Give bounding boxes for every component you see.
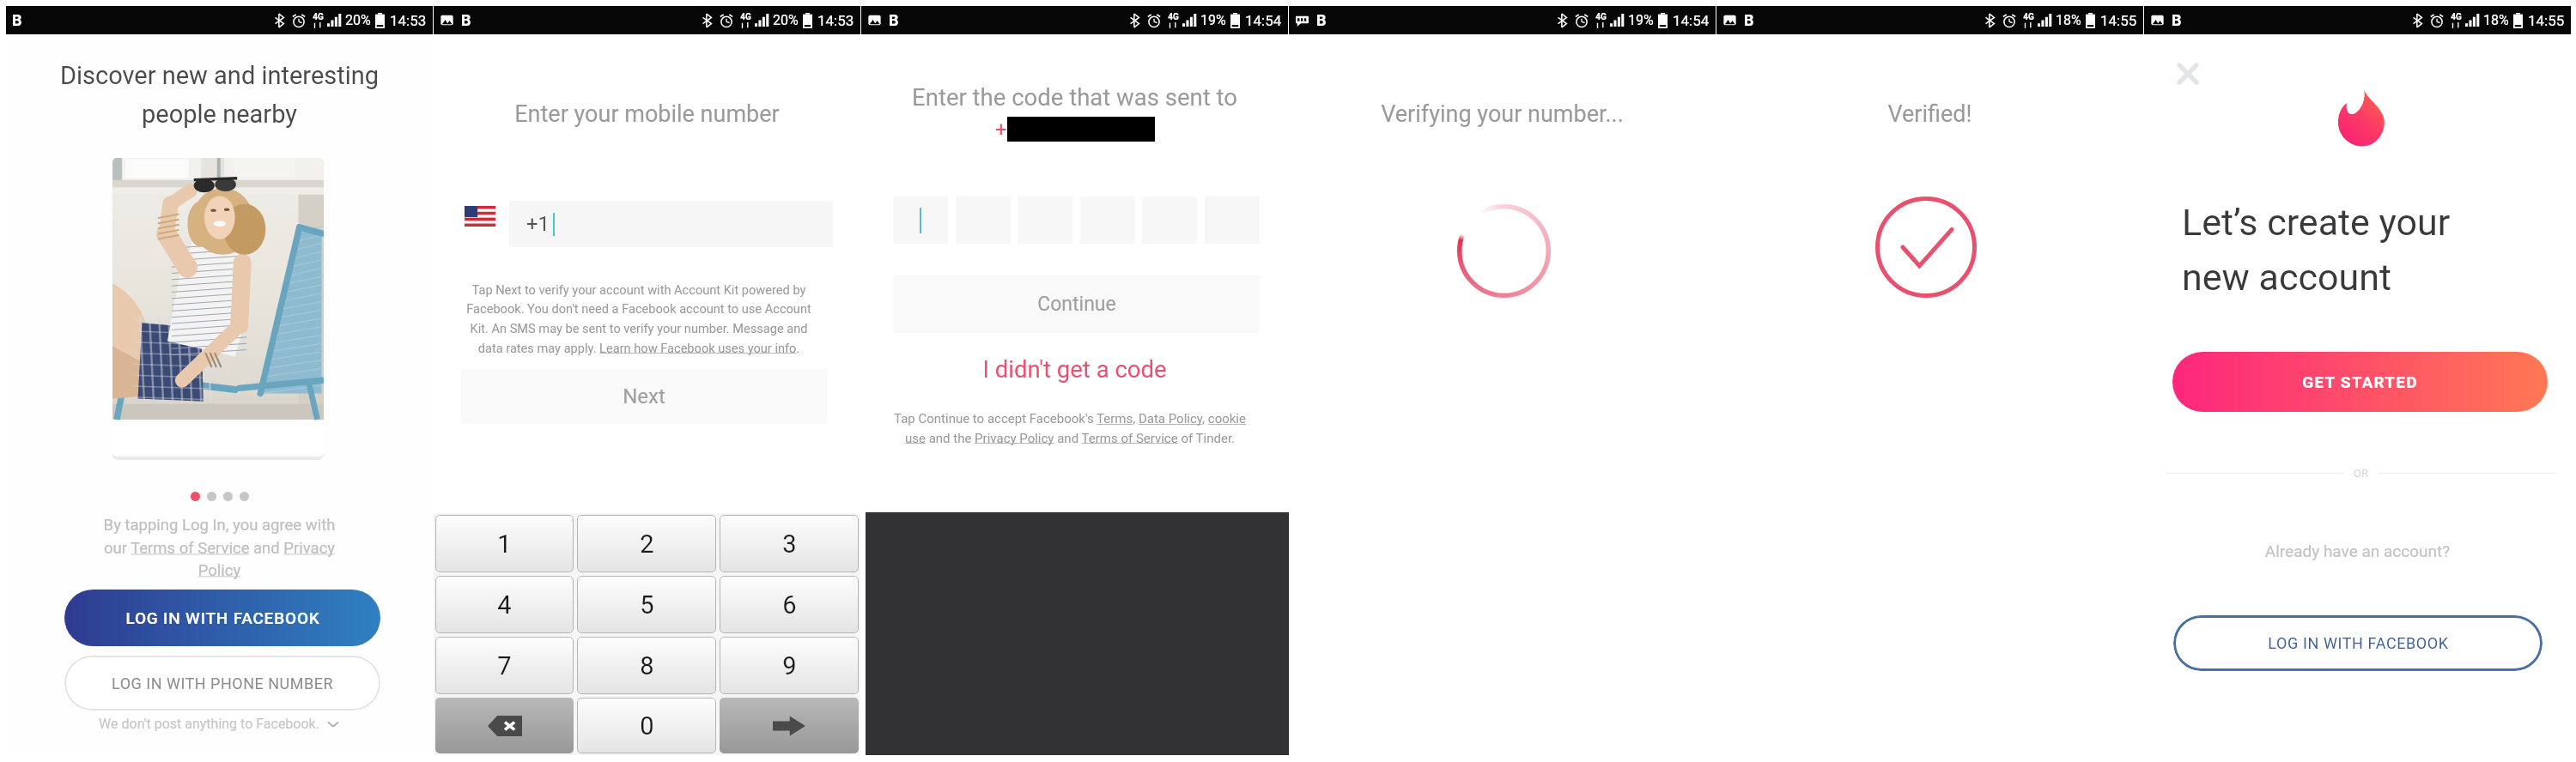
staticText: B: [12, 11, 22, 29]
staticText: 9: [782, 651, 797, 680]
button[interactable]: +1: [509, 201, 833, 247]
button[interactable]: 7: [435, 637, 574, 694]
staticText: Continue: [1037, 293, 1116, 316]
staticText: 18%: [2056, 12, 2081, 28]
staticText: OR: [2354, 467, 2368, 480]
staticText: B: [461, 11, 471, 29]
staticText: Tap Continue to accept Facebook's Terms,…: [888, 411, 1252, 445]
staticText: Let’s create your new account: [2182, 201, 2560, 299]
staticText: By tapping Log In, you agree with our Te…: [6, 516, 433, 579]
button[interactable]: 3: [720, 515, 859, 572]
staticText: 6: [782, 590, 797, 620]
staticText: 4G: [2451, 12, 2462, 22]
button[interactable]: Page 4: [240, 492, 249, 501]
button[interactable]: Page 3: [223, 492, 233, 501]
staticText: Already have an account?: [2144, 541, 2571, 560]
button[interactable]: Next: [461, 369, 827, 424]
staticText: 14:55: [2528, 12, 2565, 29]
button[interactable]: 1: [435, 515, 574, 572]
staticText: 14:55: [2100, 12, 2137, 29]
button[interactable]: Page 2: [207, 492, 216, 501]
button[interactable]: 0: [577, 698, 716, 753]
staticText: 20%: [345, 12, 371, 28]
staticText: LOG IN WITH FACEBOOK: [125, 608, 320, 627]
staticText: 14:53: [817, 12, 854, 29]
staticText: +: [995, 118, 1007, 142]
staticText: 4G: [1595, 12, 1607, 22]
staticText: 19%: [1200, 12, 1226, 28]
staticText: 4G: [1168, 12, 1179, 22]
button[interactable]: Backspace: [435, 698, 574, 753]
button[interactable]: Close: [2172, 58, 2203, 89]
staticText: Tap Next to verify your account with Acc…: [462, 282, 816, 355]
staticText: B: [1744, 11, 1754, 29]
staticText: 18%: [2483, 12, 2509, 28]
staticText: 14:53: [390, 12, 427, 29]
button[interactable]: 8: [577, 637, 716, 694]
staticText: Next: [623, 384, 665, 408]
staticText: I didn't get a code: [982, 355, 1167, 383]
button[interactable]: 2: [577, 515, 716, 572]
staticText: 0: [640, 711, 654, 741]
staticText: 4: [497, 590, 512, 620]
staticText: LOG IN WITH PHONE NUMBER: [112, 674, 333, 692]
staticText: Enter the code that was sent to: [861, 83, 1288, 111]
button[interactable]: 9: [720, 637, 859, 694]
staticText: 7: [497, 651, 512, 680]
staticText: GET STARTED: [2302, 372, 2418, 391]
button[interactable]: Continue: [893, 275, 1260, 333]
staticText: B: [2172, 11, 2182, 29]
staticText: +1: [526, 212, 550, 236]
button[interactable]: 4: [435, 576, 574, 633]
button[interactable]: Profile photo card: [112, 158, 324, 457]
staticText: B: [1316, 11, 1327, 29]
button[interactable]: 6: [720, 576, 859, 633]
button[interactable]: [893, 197, 948, 244]
staticText: LOG IN WITH FACEBOOK: [2268, 634, 2449, 652]
button[interactable]: GET STARTED: [2172, 352, 2548, 412]
button[interactable]: LOG IN WITH FACEBOOK: [64, 590, 380, 646]
staticText: 8: [640, 651, 654, 680]
button[interactable]: 5: [577, 576, 716, 633]
button[interactable]: We don't post anything to Facebook.: [6, 716, 433, 732]
staticText: 3: [782, 529, 797, 559]
staticText: Discover new and interesting people near…: [6, 61, 433, 129]
staticText: 14:54: [1673, 12, 1710, 29]
staticText: Verifying your number...: [1289, 100, 1716, 128]
button[interactable]: Page 1: [191, 492, 200, 501]
staticText: 2: [640, 529, 654, 559]
staticText: 14:54: [1245, 12, 1282, 29]
staticText: Verified!: [1716, 100, 2143, 128]
button[interactable]: LOG IN WITH FACEBOOK: [2173, 615, 2543, 671]
staticText: 19%: [1628, 12, 1654, 28]
staticText: Enter your mobile number: [434, 100, 860, 128]
staticText: 4G: [2023, 12, 2034, 22]
staticText: B: [889, 11, 899, 29]
staticText: 4G: [740, 12, 751, 22]
staticText: 4G: [313, 12, 324, 22]
staticText: 1: [497, 529, 512, 559]
staticText: 5: [640, 590, 654, 620]
button[interactable]: I didn't get a code: [861, 355, 1288, 383]
button[interactable]: Enter: [720, 698, 859, 753]
staticText: We don't post anything to Facebook.: [99, 716, 319, 732]
button[interactable]: LOG IN WITH PHONE NUMBER: [64, 656, 380, 711]
staticText: 20%: [773, 12, 799, 28]
